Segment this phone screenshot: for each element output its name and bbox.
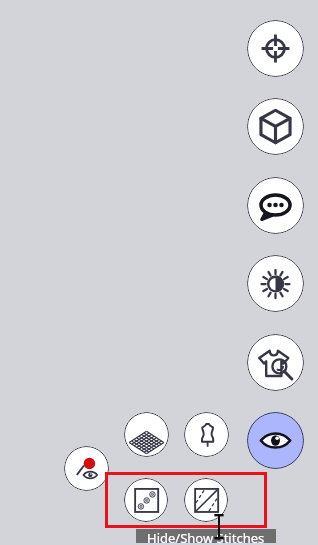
button[interactable]: Show	[247, 412, 304, 469]
staticText: Hide/Show Stitches	[147, 529, 265, 543]
button[interactable]: Stitches	[124, 478, 168, 522]
button[interactable]: Comments	[247, 177, 304, 234]
button[interactable]: 3D view	[247, 98, 304, 155]
button[interactable]: Show avatar	[184, 412, 229, 457]
button[interactable]: Hide/Show Stitches	[184, 478, 228, 522]
button[interactable]: Show mesh	[124, 412, 169, 457]
button[interactable]: Show pins	[64, 446, 109, 491]
button[interactable]: Inspect garment	[247, 334, 304, 391]
button[interactable]: Target	[247, 20, 304, 77]
button[interactable]: Brightness	[247, 255, 304, 312]
